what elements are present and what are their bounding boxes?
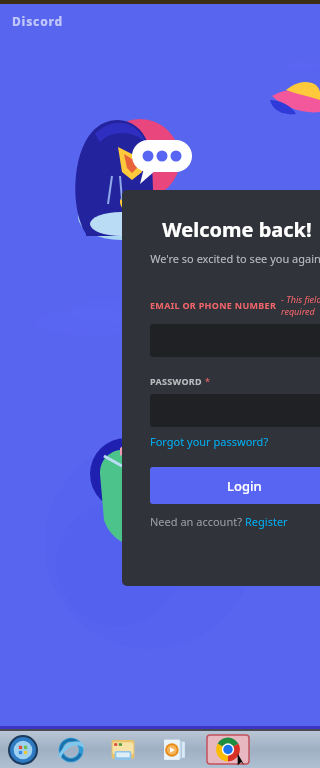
staticText: Welcome back! bbox=[136, 216, 320, 243]
staticText: Discord bbox=[12, 13, 64, 29]
staticText: We're so excited to see you again! bbox=[136, 251, 320, 266]
button[interactable]: Windows Explorer bbox=[110, 737, 136, 763]
button[interactable]: Register bbox=[245, 514, 288, 529]
button[interactable]: Windows Media Player bbox=[162, 737, 188, 763]
button[interactable]: Login bbox=[150, 467, 320, 504]
staticText: EMAIL OR PHONE NUMBER bbox=[150, 299, 277, 311]
button[interactable]: Google Chrome bbox=[206, 733, 250, 766]
staticText: * bbox=[205, 375, 210, 387]
button[interactable]: Discord home bbox=[12, 13, 64, 29]
staticText: - This field is required bbox=[281, 293, 320, 317]
staticText: PASSWORD bbox=[150, 375, 202, 387]
staticText: Login bbox=[227, 477, 262, 495]
button[interactable]: Start bbox=[8, 735, 38, 765]
staticText: Register bbox=[245, 514, 288, 529]
button[interactable]: Internet Explorer bbox=[58, 737, 84, 763]
button[interactable]: Forgot your password? bbox=[150, 434, 269, 449]
staticText: Forgot your password? bbox=[150, 434, 269, 449]
staticText: Need an account? bbox=[150, 514, 245, 529]
